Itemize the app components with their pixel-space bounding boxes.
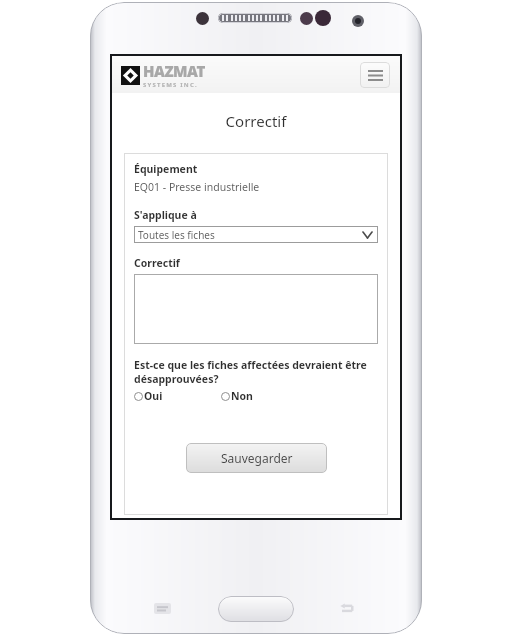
- button[interactable]: Toutes les fiches: [134, 226, 378, 243]
- staticText: Correctif: [134, 256, 180, 270]
- staticText: désapprouvées?: [134, 372, 219, 386]
- staticText: Correctif: [112, 111, 400, 131]
- button[interactable]: Home: [218, 596, 294, 622]
- staticText: SYSTEMS INC.: [143, 81, 198, 89]
- button[interactable]: Oui: [134, 389, 163, 403]
- button[interactable]: Non: [221, 389, 253, 403]
- button[interactable]: Sauvegarder: [186, 443, 327, 473]
- staticText: Équipement: [134, 162, 198, 176]
- button[interactable]: Menu: [360, 62, 390, 88]
- staticText: Oui: [144, 389, 163, 403]
- staticText: HAZMAT: [143, 61, 205, 81]
- button[interactable]: Back: [338, 601, 358, 615]
- staticText: Non: [231, 389, 253, 403]
- staticText: Toutes les fiches: [138, 228, 215, 242]
- button[interactable]: [134, 274, 378, 344]
- staticText: EQ01 - Presse industrielle: [134, 180, 260, 194]
- staticText: Est-ce que les fiches affectées devraien…: [134, 358, 367, 372]
- staticText: S'applique à: [134, 208, 197, 222]
- button[interactable]: Recent apps: [152, 601, 172, 615]
- staticText: Sauvegarder: [221, 450, 293, 466]
